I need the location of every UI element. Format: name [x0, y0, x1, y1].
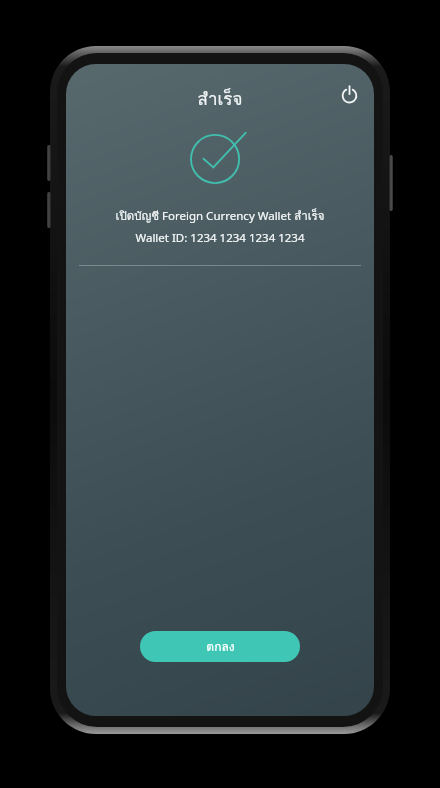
button[interactable]: ตกลง — [140, 631, 300, 662]
staticText: สำเร็จ — [66, 85, 374, 112]
button[interactable]: Power — [332, 77, 366, 111]
staticText: เปิดบัญชี Foreign Currency Wallet สำเร็จ — [76, 207, 364, 225]
staticText: ตกลง — [206, 637, 235, 656]
staticText: Wallet ID: 1234 1234 1234 1234 — [76, 230, 364, 246]
